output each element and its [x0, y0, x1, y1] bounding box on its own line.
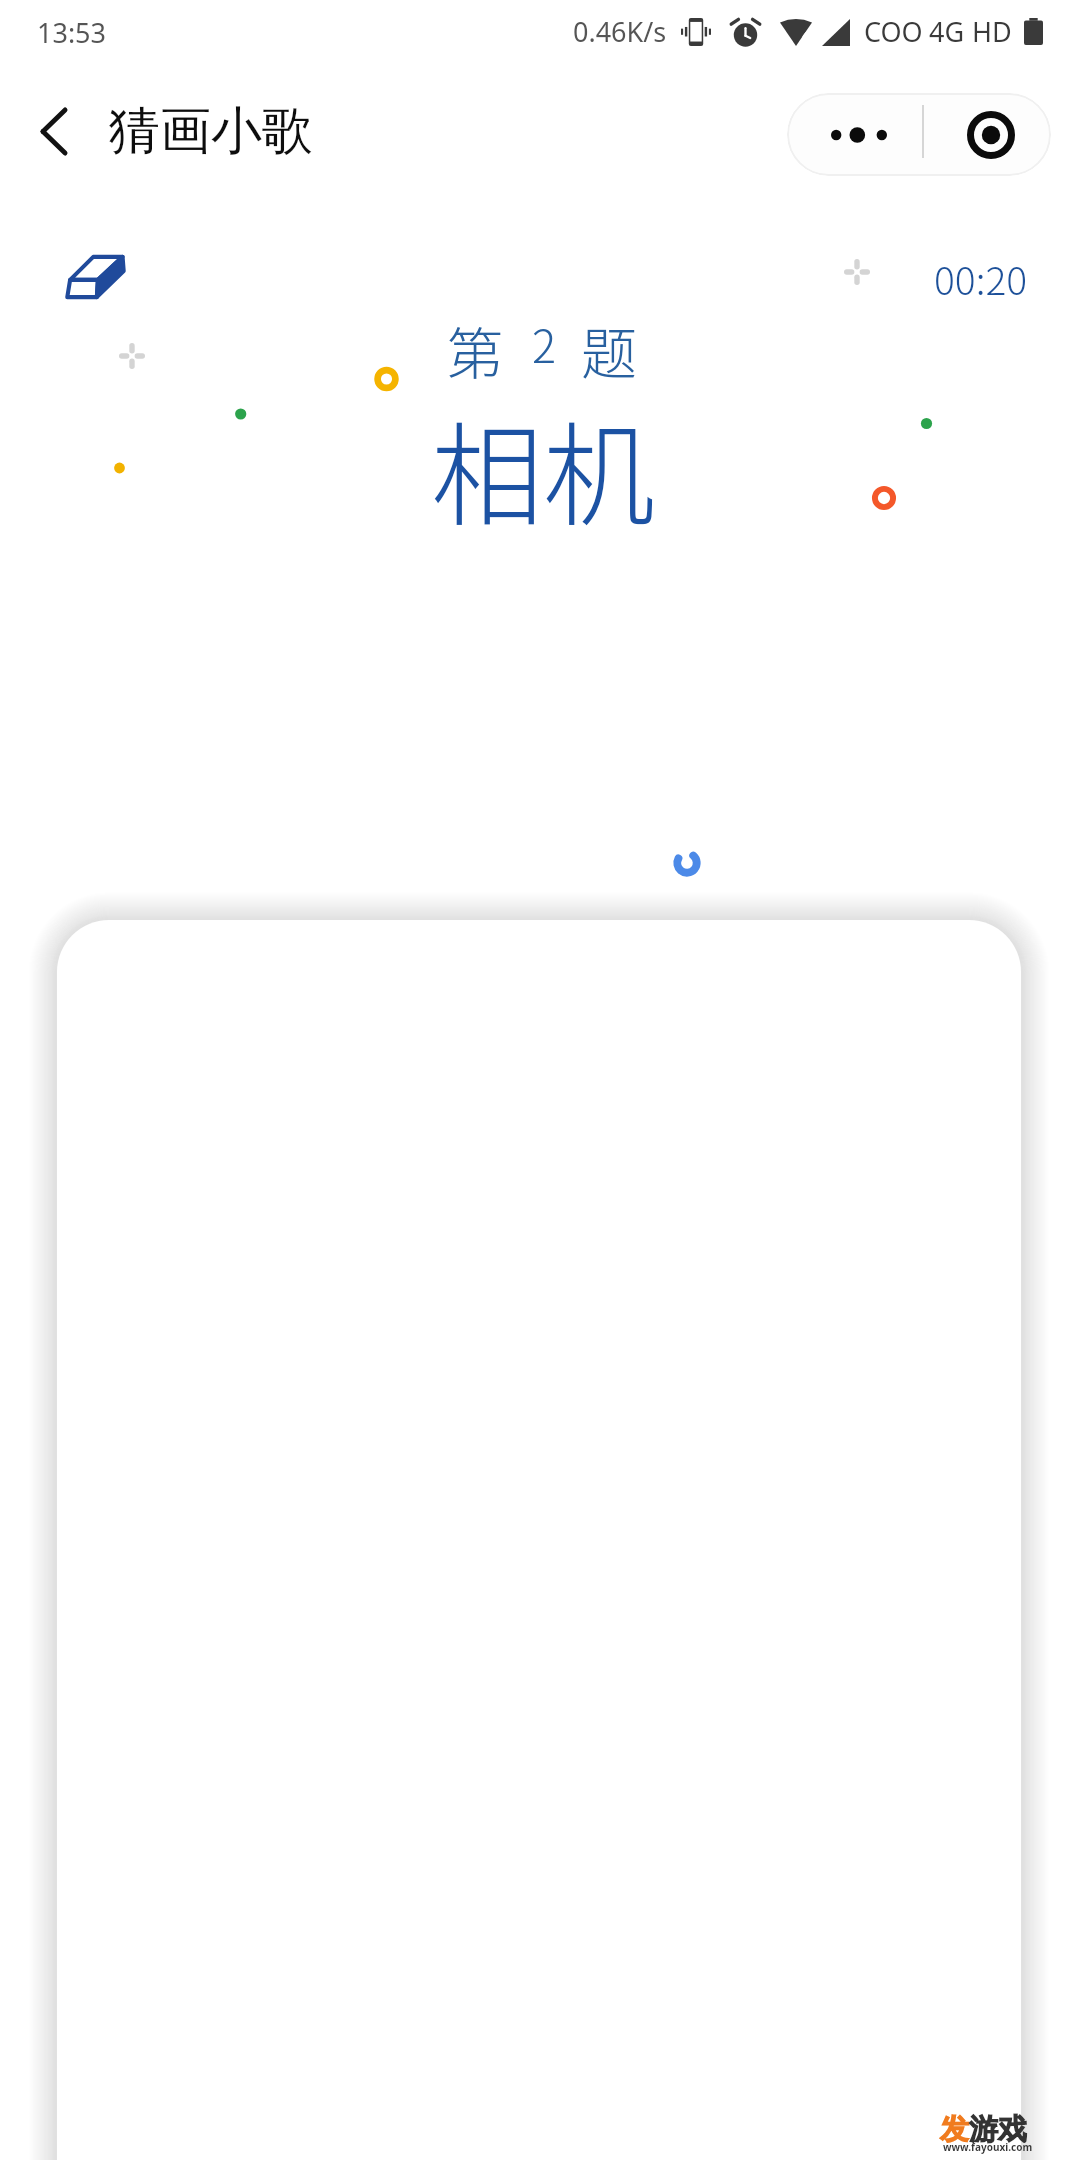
staticText: 游戏: [969, 2111, 1027, 2148]
button[interactable]: Eraser: [44, 236, 145, 318]
staticText: 第: [447, 309, 503, 390]
staticText: www.fayouxi.com: [943, 2140, 1033, 2154]
button[interactable]: Close: [924, 93, 1051, 176]
staticText: 猜画小歌: [109, 99, 313, 163]
staticText: 题: [581, 309, 637, 390]
button[interactable]: Back: [14, 91, 94, 171]
staticText: 13:53: [37, 14, 107, 51]
staticText: 0.46K/s: [573, 13, 667, 50]
button[interactable]: More options: [787, 93, 922, 176]
staticText: 00:20: [934, 250, 1028, 306]
staticText: HD: [972, 13, 1012, 50]
staticText: 2: [532, 311, 557, 376]
staticText: 发: [940, 2111, 969, 2148]
staticText: 相机: [431, 387, 655, 549]
staticText: COO: [864, 13, 923, 50]
staticText: 4G: [929, 13, 965, 50]
button[interactable]: Drawing canvas: [57, 920, 1021, 2160]
